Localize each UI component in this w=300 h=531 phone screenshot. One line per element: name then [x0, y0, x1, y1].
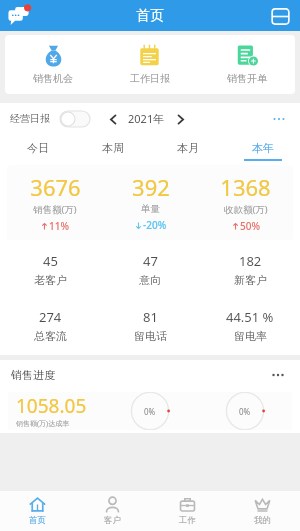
staticText: 44.51 %	[226, 308, 274, 326]
staticText: 留电率	[234, 329, 267, 343]
staticText: 2021年	[128, 111, 165, 126]
button[interactable]: 工作	[150, 491, 225, 531]
button[interactable]: 本月	[150, 134, 225, 161]
staticText: 单量	[141, 203, 160, 215]
button[interactable]: 81	[100, 306, 200, 345]
staticText: 工作	[179, 515, 196, 526]
staticText: 本年	[252, 141, 274, 155]
button[interactable]: 182	[200, 250, 300, 289]
staticText: 意向	[139, 273, 161, 287]
staticText: 1368	[220, 172, 271, 202]
staticText: 经营日报	[10, 112, 50, 125]
button[interactable]: Scan	[266, 2, 294, 30]
button[interactable]: 45	[0, 250, 100, 289]
button[interactable]: Previous year	[104, 110, 122, 128]
button[interactable]: More options	[267, 364, 289, 386]
staticText: 销售进度	[11, 368, 55, 382]
staticText: 本周	[102, 141, 124, 155]
staticText: 50%	[240, 219, 260, 233]
staticText: 0%	[239, 406, 251, 417]
button[interactable]: 本年	[225, 134, 300, 161]
button[interactable]: 客户	[75, 491, 150, 531]
button[interactable]: 274	[0, 306, 100, 345]
staticText: 本月	[177, 141, 199, 155]
staticText: 47	[143, 252, 158, 270]
staticText: 182	[239, 252, 262, 270]
button[interactable]: 今日	[0, 134, 75, 161]
button[interactable]: 3676	[7, 172, 103, 233]
button[interactable]: 销售开单	[198, 42, 295, 87]
staticText: 销售额(万)	[33, 203, 77, 216]
staticText: 工作日报	[130, 72, 170, 85]
staticText: 0%	[144, 406, 156, 417]
staticText: 今日	[27, 141, 49, 155]
staticText: 留电话	[134, 329, 167, 343]
staticText: 销售机会	[33, 72, 73, 85]
staticText: 392	[132, 172, 170, 202]
staticText: 销售开单	[227, 72, 267, 85]
staticText: 总客流	[34, 329, 67, 343]
staticText: 首页	[29, 515, 46, 526]
button[interactable]: 392	[103, 172, 198, 232]
staticText: 收款额(万)	[224, 203, 268, 216]
staticText: 1058.05	[16, 393, 87, 419]
staticText: 老客户	[34, 273, 67, 287]
staticText: -20%	[143, 218, 167, 232]
staticText: 81	[143, 308, 158, 326]
button[interactable]: 工作日报	[101, 42, 198, 87]
button[interactable]: 44.51 %	[200, 306, 300, 345]
button[interactable]: Next year	[171, 110, 189, 128]
button[interactable]: 1368	[198, 172, 293, 233]
staticText: 274	[39, 308, 62, 326]
staticText: 首页	[136, 7, 164, 25]
button[interactable]: 销售机会	[5, 42, 101, 87]
button[interactable]	[60, 111, 90, 127]
button[interactable]: 本周	[75, 134, 150, 161]
staticText: 我的	[254, 515, 271, 526]
staticText: 销售额(万)达成率	[16, 419, 70, 429]
button[interactable]: More options	[268, 108, 290, 130]
staticText: 客户	[104, 515, 121, 526]
button[interactable]: Messages	[4, 1, 34, 31]
staticText: 新客户	[234, 273, 267, 287]
staticText: 45	[43, 252, 58, 270]
button[interactable]: 47	[100, 250, 200, 289]
button[interactable]: 首页	[0, 491, 75, 531]
button[interactable]: 我的	[225, 491, 300, 531]
staticText: 11%	[49, 219, 69, 233]
staticText: 3676	[30, 172, 81, 202]
